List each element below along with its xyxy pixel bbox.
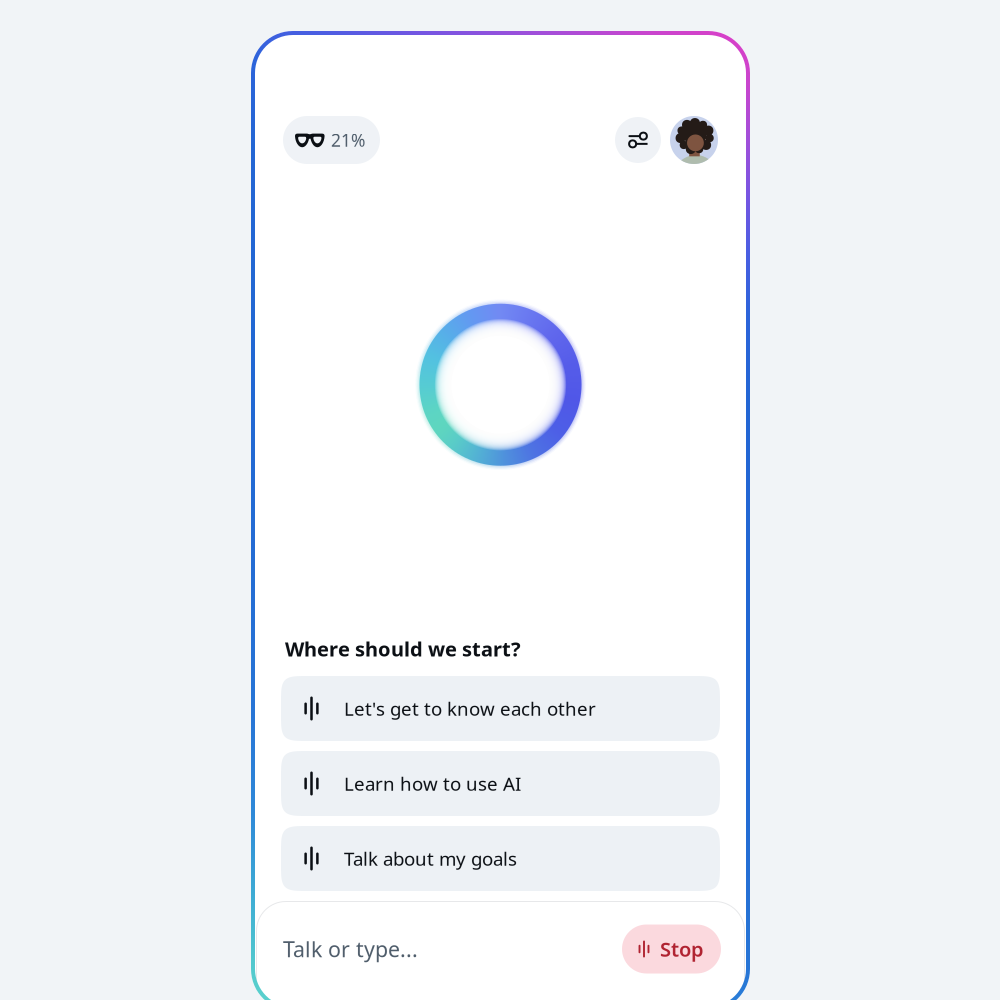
staticText: Learn how to use AI	[344, 771, 521, 796]
staticText: Let's get to know each other	[344, 696, 596, 721]
button[interactable]: Profile	[670, 116, 718, 164]
button[interactable]: Let's get to know each other	[281, 676, 720, 741]
button[interactable]: 21%	[283, 116, 380, 164]
button[interactable]: Talk about my goals	[281, 826, 720, 891]
button[interactable]: Learn how to use AI	[281, 751, 720, 816]
staticText: Stop	[660, 936, 704, 962]
button[interactable]: Stop	[622, 924, 721, 973]
staticText: Where should we start?	[285, 635, 521, 662]
button[interactable]: Settings	[615, 117, 661, 163]
staticText: Talk or type...	[283, 935, 418, 963]
staticText: 21%	[331, 128, 365, 151]
staticText: Talk about my goals	[344, 846, 517, 871]
